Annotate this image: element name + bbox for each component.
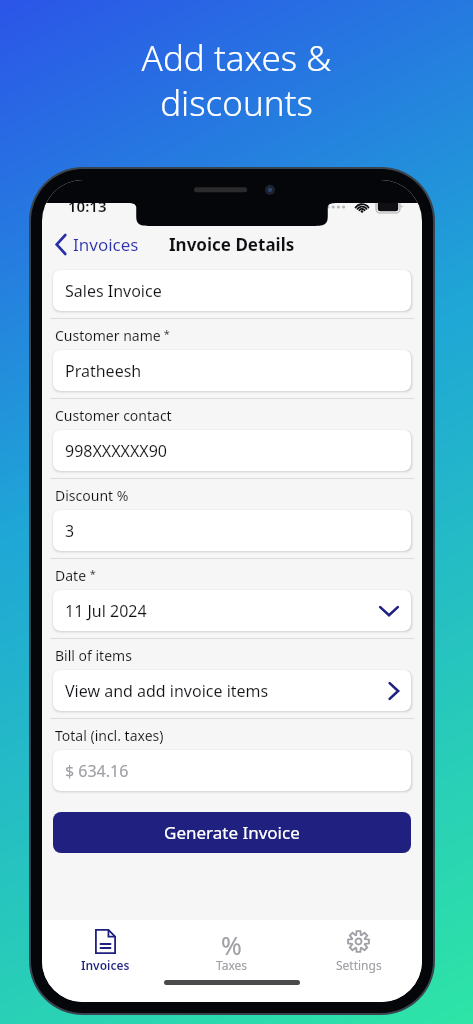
button[interactable]: 998XXXXXX90	[53, 430, 411, 471]
staticText: Customer name	[55, 326, 161, 345]
button[interactable]: $ 634.16	[53, 750, 411, 791]
staticText: View and add invoice items	[65, 680, 388, 702]
staticText: Settings	[336, 957, 382, 973]
staticText: 10:13	[68, 196, 107, 216]
staticText: Pratheesh	[65, 360, 399, 382]
staticText: Date	[55, 566, 87, 585]
staticText: Sales Invoice	[65, 280, 399, 302]
staticText: %	[221, 928, 242, 955]
button[interactable]: 11 Jul 2024	[53, 590, 411, 631]
staticText: *	[161, 326, 170, 341]
staticText: Taxes	[216, 957, 248, 973]
button[interactable]: Taxes	[168, 920, 295, 980]
staticText: 3	[65, 520, 399, 542]
staticText: Customer contact	[55, 406, 172, 425]
staticText: Invoices	[81, 957, 130, 973]
button[interactable]: Settings	[295, 920, 422, 980]
staticText: Invoices	[73, 233, 139, 256]
staticText: 11 Jul 2024	[65, 600, 379, 622]
button[interactable]: Pratheesh	[53, 350, 411, 391]
staticText: Total (incl. taxes)	[55, 726, 164, 745]
button[interactable]: Sales Invoice	[53, 270, 411, 311]
button[interactable]: Invoices	[50, 229, 145, 260]
button[interactable]: View and add invoice items	[53, 670, 411, 711]
staticText: Add taxes & discounts	[0, 34, 473, 127]
staticText: 998XXXXXX90	[65, 440, 399, 462]
staticText: Bill of items	[55, 646, 132, 665]
button[interactable]: Generate Invoice	[53, 812, 411, 853]
staticText: $ 634.16	[65, 760, 399, 782]
button[interactable]: 3	[53, 510, 411, 551]
staticText: Invoice Details	[169, 233, 295, 256]
staticText: *	[87, 566, 96, 581]
staticText: Discount %	[55, 486, 129, 505]
button[interactable]: Invoices	[42, 920, 168, 980]
staticText: Generate Invoice	[164, 821, 300, 844]
